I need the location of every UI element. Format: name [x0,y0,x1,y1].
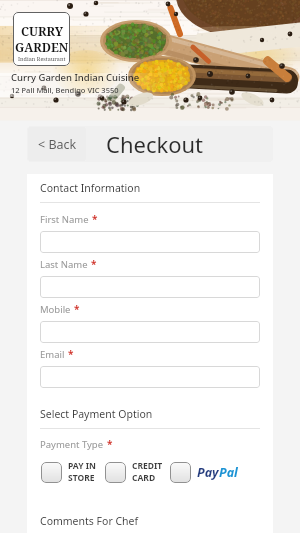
button[interactable]: < Back [28,127,86,161]
staticText: Select Payment Option [40,407,153,421]
button[interactable]: PAY IN [41,460,96,484]
staticText: CREDIT [132,460,163,472]
staticText: Contact Information [40,181,141,195]
staticText: PAY IN [68,460,96,472]
staticText: * [107,437,113,451]
staticText: Comments For Chef [40,514,139,528]
staticText: * [92,212,98,226]
staticText: CARD [132,472,156,484]
staticText: GARDEN [15,39,69,55]
staticText: CURRY [21,23,64,39]
button[interactable] [40,276,260,298]
button[interactable]: CREDIT [105,460,163,484]
staticText: Email [40,348,65,361]
staticText: * [68,347,74,361]
button[interactable] [40,366,260,388]
staticText: Curry Garden Indian Cuisine [11,71,140,84]
staticText: * [91,257,97,271]
staticText: * [74,302,80,316]
button[interactable] [40,231,260,253]
staticText: Pal [219,464,238,481]
staticText: First Name [40,213,89,226]
staticText: 12 Pall Mall, Bendigo VIC 3550 [11,85,119,95]
button[interactable] [40,321,260,343]
staticText: Checkout [106,129,204,159]
button[interactable]: PayPal [170,462,238,483]
staticText: Last Name [40,258,88,271]
staticText: Mobile [40,303,71,316]
staticText: Payment Type [40,438,104,451]
staticText: Indian Restaurant [18,55,66,62]
staticText: < Back [38,136,77,153]
staticText: STORE [68,472,95,484]
staticText: Pay [197,464,219,481]
